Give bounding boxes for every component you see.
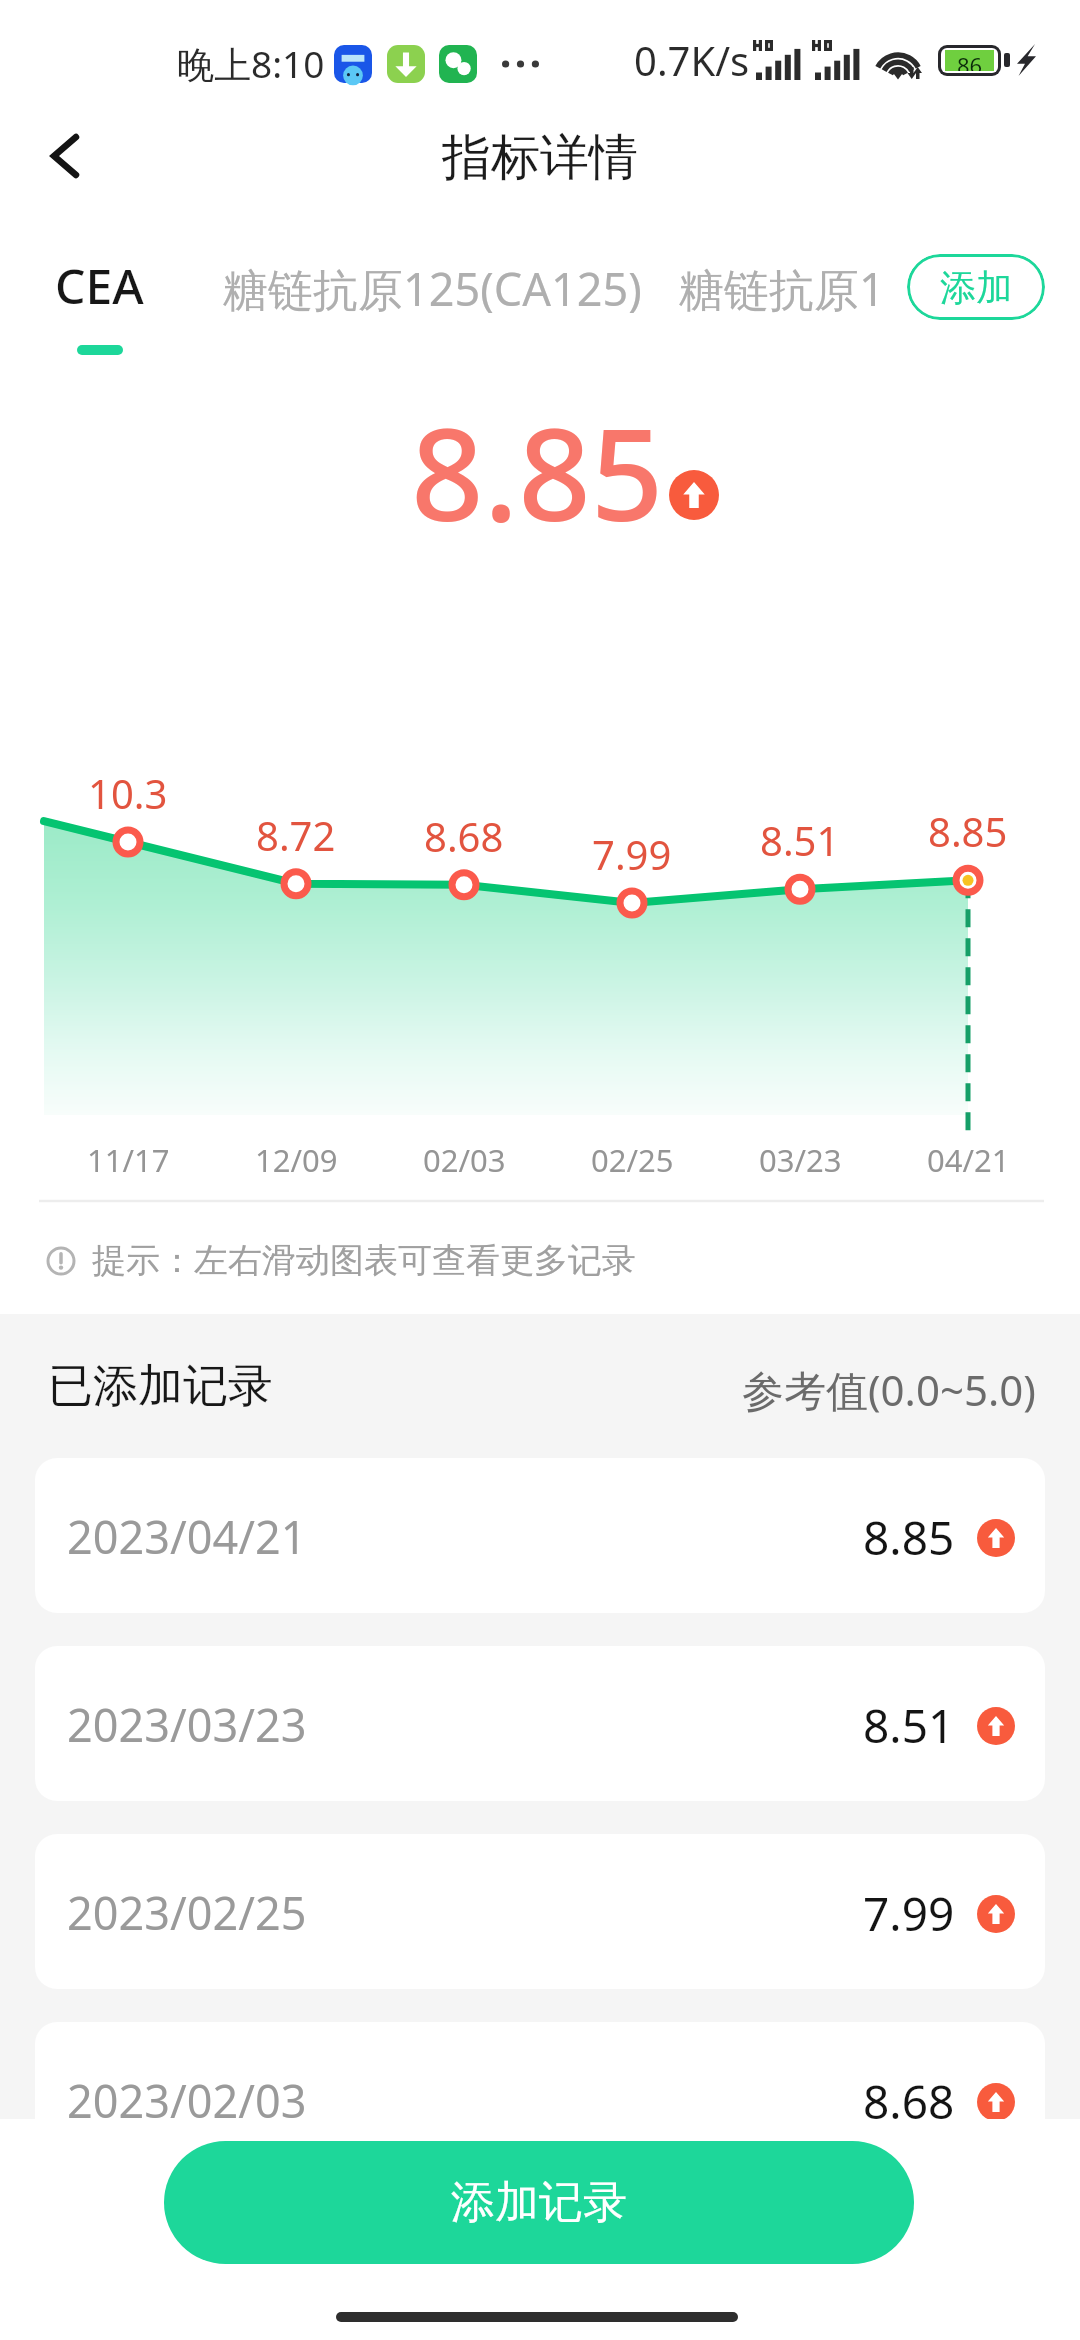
staticText: CEA [55, 253, 144, 318]
staticText: 指标详情 [442, 127, 638, 189]
button[interactable]: 糖链抗原15 [679, 258, 879, 328]
button[interactable]: 2023/04/21 [35, 1458, 1045, 1613]
staticText: 2023/03/23 [67, 1694, 307, 1755]
staticText: 添加 [940, 265, 1012, 310]
staticText: 10.3 [88, 766, 168, 820]
staticText: 8.85 [411, 385, 664, 558]
staticText: 04/21 [927, 1139, 1010, 1181]
staticText: 8.72 [256, 808, 336, 862]
staticText: 0.7K/s [634, 33, 750, 87]
staticText: 提示：左右滑动图表可查看更多记录 [92, 1239, 636, 1282]
staticText: 8.68 [863, 2070, 955, 2133]
staticText: 7.99 [592, 827, 672, 881]
staticText: 晚上8:10 [177, 38, 325, 89]
staticText: 2023/02/25 [67, 1882, 307, 1943]
staticText: 参考值(0.0~5.0) [742, 1361, 1036, 1418]
button[interactable]: 2023/02/25 [35, 1834, 1045, 1989]
button[interactable]: 糖链抗原125(CA125) [223, 258, 642, 319]
staticText: 已添加记录 [48, 1358, 273, 1415]
staticText: 02/25 [591, 1139, 674, 1181]
staticText: 8.51 [760, 813, 840, 867]
staticText: 02/03 [423, 1139, 506, 1181]
button[interactable]: CEA [55, 253, 144, 318]
staticText: 2023/04/21 [67, 1506, 307, 1567]
button[interactable]: 2023/03/23 [35, 1646, 1045, 1801]
staticText: 糖链抗原15 [679, 258, 879, 319]
staticText: 糖链抗原125(CA125) [223, 258, 642, 319]
staticText: 03/23 [759, 1139, 842, 1181]
button[interactable]: 2023/02/03 [35, 2022, 1045, 2177]
staticText: 86 [957, 50, 983, 71]
button[interactable]: 添加 [907, 254, 1045, 320]
staticText: 8.85 [863, 1506, 955, 1569]
staticText: 2023/02/03 [67, 2070, 307, 2131]
staticText: 11/17 [87, 1139, 170, 1181]
button[interactable]: Back [22, 113, 108, 199]
staticText: 7.99 [863, 1882, 955, 1945]
staticText: 8.85 [928, 804, 1008, 858]
staticText: 添加记录 [451, 2175, 627, 2230]
staticText: 12/09 [255, 1139, 338, 1181]
staticText: 8.51 [863, 1694, 955, 1757]
staticText: 8.68 [424, 809, 504, 863]
button[interactable]: 添加记录 [164, 2141, 914, 2264]
